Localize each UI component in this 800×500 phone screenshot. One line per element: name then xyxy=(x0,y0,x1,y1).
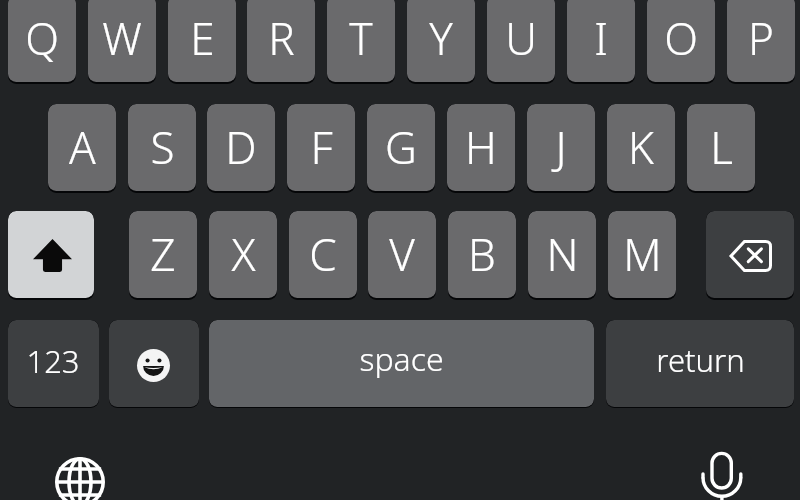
staticText: C xyxy=(309,224,337,284)
staticText: return xyxy=(656,339,745,381)
staticText: P xyxy=(748,8,774,68)
button[interactable]: T xyxy=(327,0,395,84)
button[interactable]: N xyxy=(528,211,596,300)
staticText: E xyxy=(190,8,215,68)
staticText: 123 xyxy=(26,340,80,382)
button[interactable]: R xyxy=(247,0,315,84)
button[interactable]: D xyxy=(207,104,275,193)
staticText: R xyxy=(268,8,295,68)
staticText: J xyxy=(555,117,567,177)
staticText: Q xyxy=(25,8,59,68)
button[interactable]: L xyxy=(687,104,755,193)
button[interactable]: Z xyxy=(129,211,197,300)
button[interactable]: P xyxy=(727,0,795,84)
button[interactable]: F xyxy=(287,104,355,193)
button[interactable]: J xyxy=(527,104,595,193)
staticText: L xyxy=(710,117,733,177)
button[interactable]: U xyxy=(487,0,555,84)
button[interactable]: I xyxy=(567,0,635,84)
button[interactable]: C xyxy=(289,211,357,300)
staticText: F xyxy=(310,117,333,177)
staticText: X xyxy=(231,224,256,284)
staticText: space xyxy=(359,337,444,381)
button[interactable]: H xyxy=(447,104,515,193)
staticText: B xyxy=(468,224,496,284)
staticText: T xyxy=(349,8,373,68)
button[interactable]: return xyxy=(606,320,794,408)
button[interactable]: M xyxy=(608,211,676,300)
staticText: D xyxy=(225,117,257,177)
staticText: N xyxy=(546,224,579,284)
button[interactable]: A xyxy=(48,104,116,193)
button[interactable]: Q xyxy=(8,0,76,84)
staticText: A xyxy=(69,117,96,177)
button[interactable]: Emoji xyxy=(109,320,199,408)
staticText: O xyxy=(664,8,698,68)
staticText: M xyxy=(623,224,662,284)
button[interactable]: Y xyxy=(407,0,475,84)
staticText: G xyxy=(385,117,417,177)
button[interactable]: G xyxy=(367,104,435,193)
button[interactable]: W xyxy=(88,0,156,84)
staticText: W xyxy=(102,8,142,68)
staticText: H xyxy=(465,117,497,177)
button[interactable]: Dictation xyxy=(691,445,753,500)
button[interactable]: B xyxy=(448,211,516,300)
button[interactable]: S xyxy=(128,104,196,193)
button[interactable]: O xyxy=(647,0,715,84)
staticText: I xyxy=(594,8,608,68)
staticText: Y xyxy=(429,8,453,68)
button[interactable]: Delete xyxy=(706,211,794,300)
staticText: S xyxy=(150,117,175,177)
staticText: Z xyxy=(150,224,176,284)
staticText: U xyxy=(505,8,537,68)
button[interactable]: X xyxy=(209,211,277,300)
button[interactable]: Shift xyxy=(8,211,94,300)
staticText: V xyxy=(389,224,415,284)
button[interactable]: K xyxy=(607,104,675,193)
button[interactable]: E xyxy=(168,0,236,84)
staticText: K xyxy=(628,117,654,177)
button[interactable]: V xyxy=(368,211,436,300)
button[interactable]: Next keyboard xyxy=(49,451,111,500)
button[interactable]: 123 xyxy=(8,320,99,408)
button[interactable]: space xyxy=(209,320,594,408)
